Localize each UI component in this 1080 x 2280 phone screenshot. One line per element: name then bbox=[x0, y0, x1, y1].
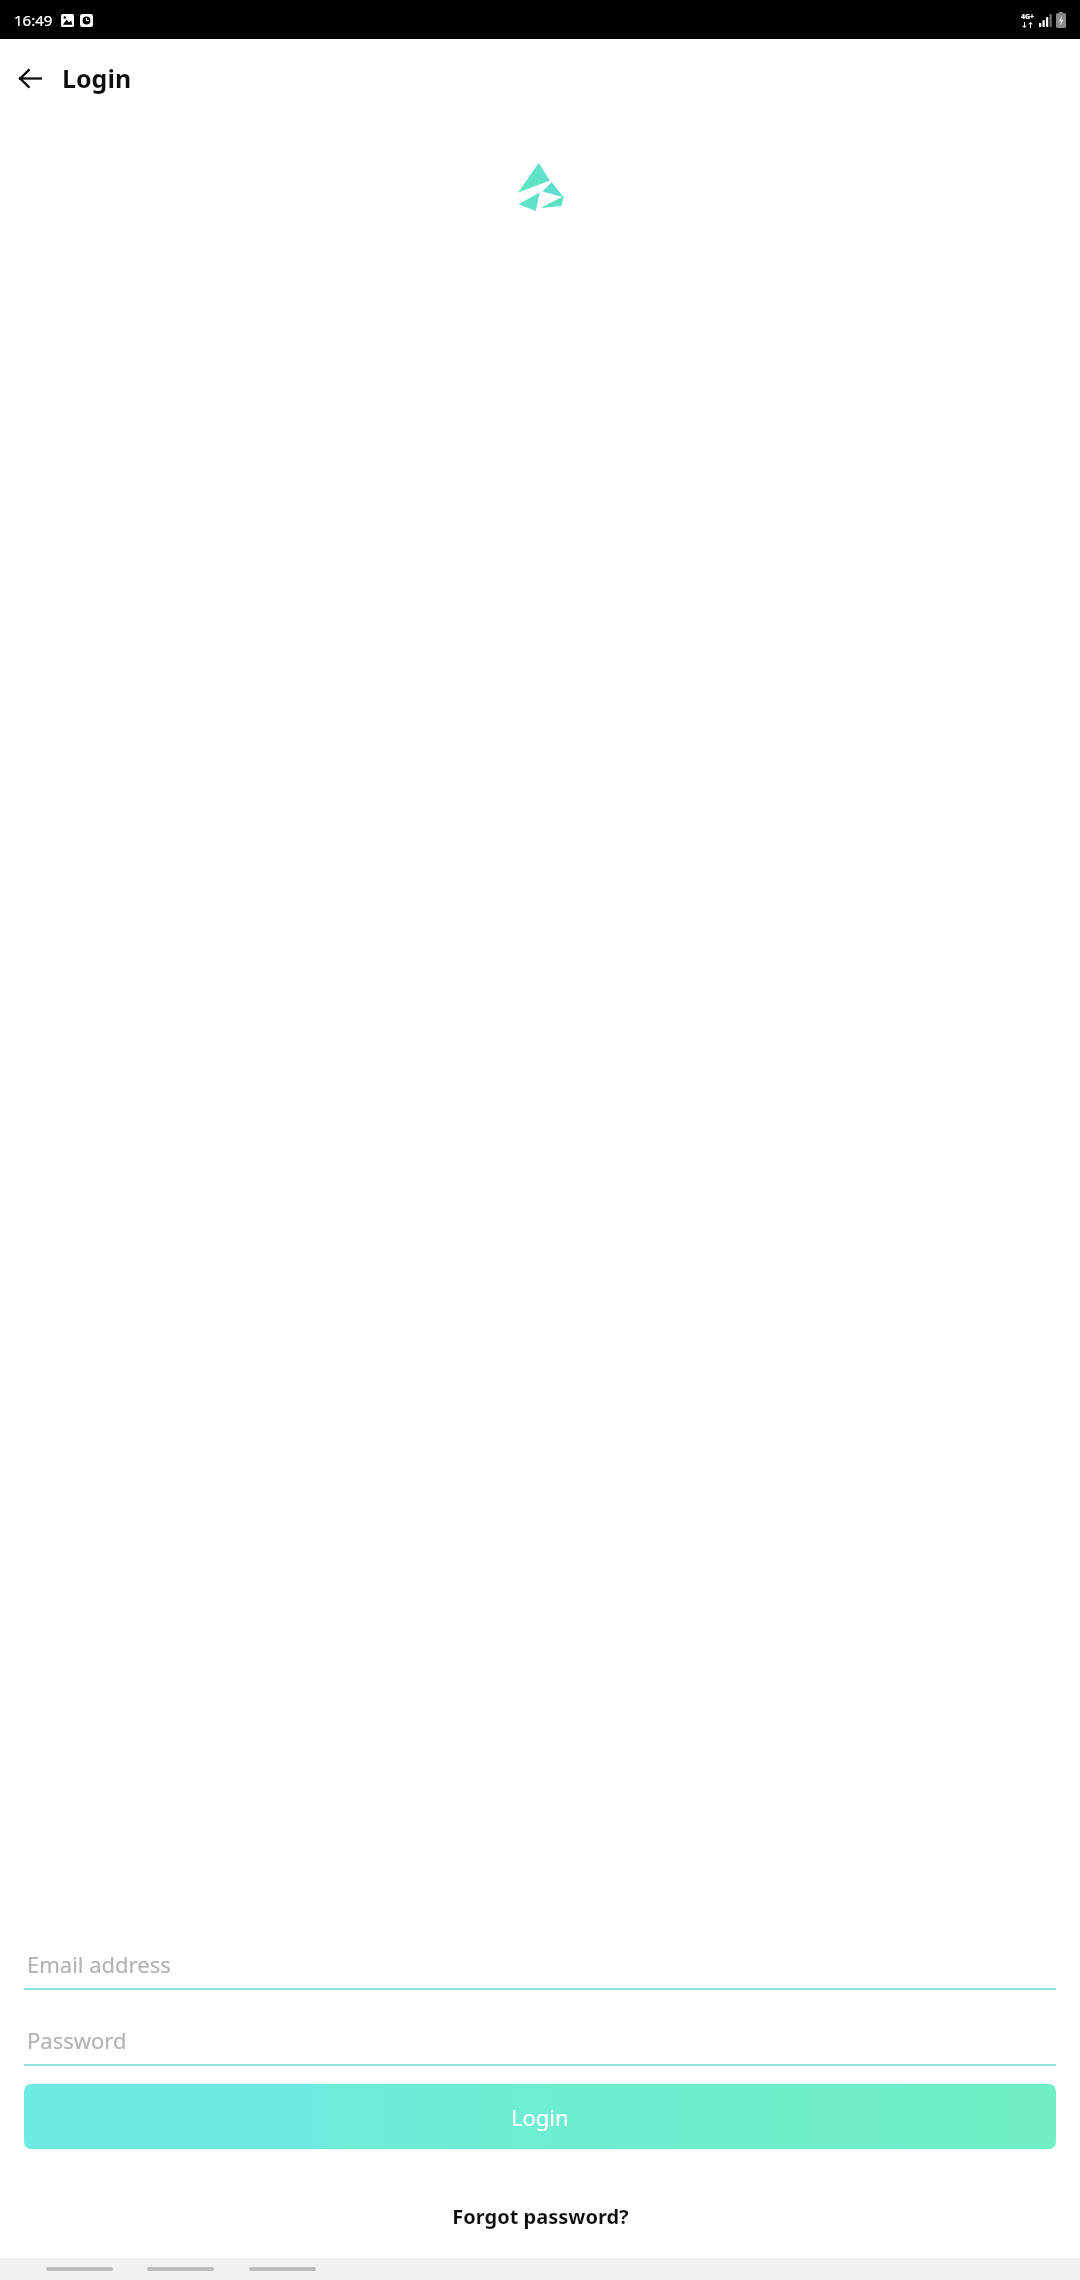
button[interactable]: Back bbox=[6, 54, 54, 102]
staticText: Password bbox=[27, 2025, 127, 2055]
button[interactable]: Forgot password? bbox=[442, 2197, 639, 2236]
button[interactable]: Navigation bbox=[46, 2267, 113, 2271]
button[interactable]: Login bbox=[24, 2084, 1056, 2149]
staticText: 4G+ bbox=[1021, 12, 1035, 22]
button[interactable]: Email address bbox=[24, 1940, 1056, 1990]
button[interactable]: Navigation bbox=[147, 2267, 214, 2271]
button[interactable]: Navigation bbox=[249, 2267, 316, 2271]
button[interactable]: Password bbox=[24, 2016, 1056, 2066]
staticText: Login bbox=[62, 61, 132, 95]
staticText: Forgot password? bbox=[452, 2203, 629, 2230]
staticText: Email address bbox=[27, 1949, 171, 1979]
staticText: Login bbox=[511, 2102, 569, 2132]
staticText: 16:49 bbox=[14, 10, 53, 30]
